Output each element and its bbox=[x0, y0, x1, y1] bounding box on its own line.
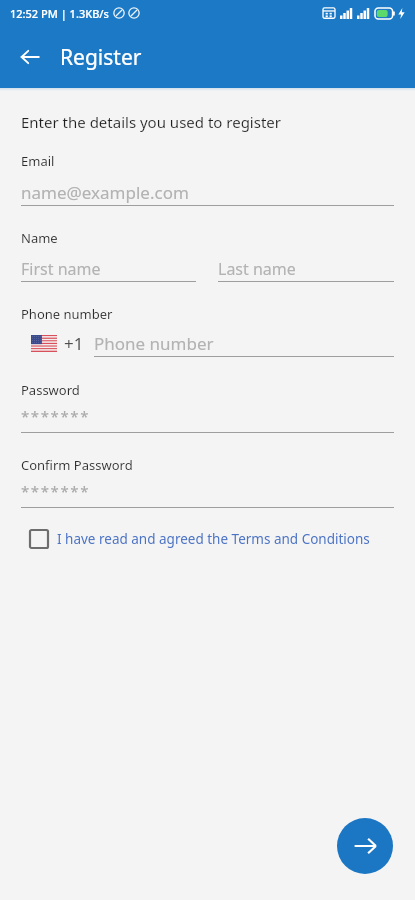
staticText: Enter the details you used to register bbox=[21, 112, 281, 132]
staticText: First name bbox=[21, 258, 101, 280]
staticText: Confirm Password bbox=[21, 456, 133, 474]
staticText: Phone number bbox=[21, 305, 113, 323]
button[interactable]: I have read and agreed the Terms and Con… bbox=[21, 524, 394, 554]
button[interactable]: Phone number bbox=[94, 330, 394, 357]
button[interactable]: ******* bbox=[21, 474, 394, 508]
button[interactable]: Next bbox=[337, 818, 393, 874]
staticText: Name bbox=[21, 229, 58, 247]
staticText: Last name bbox=[218, 258, 296, 280]
staticText: Phone number bbox=[94, 332, 214, 355]
button[interactable]: First name bbox=[21, 247, 196, 282]
button[interactable]: name@example.com bbox=[21, 170, 394, 206]
staticText: Register bbox=[60, 43, 142, 72]
button[interactable]: Back bbox=[8, 35, 52, 79]
staticText: +1 bbox=[64, 332, 84, 355]
staticText: Password bbox=[21, 381, 80, 399]
button[interactable]: Country code United States +1 bbox=[21, 332, 84, 355]
button[interactable]: ******* bbox=[21, 399, 394, 433]
staticText: ******* bbox=[21, 481, 91, 501]
staticText: ******* bbox=[21, 406, 91, 426]
button[interactable]: Last name bbox=[218, 247, 394, 282]
staticText: name@example.com bbox=[21, 181, 189, 204]
staticText: Email bbox=[21, 152, 55, 170]
staticText: I have read and agreed the Terms and Con… bbox=[57, 530, 370, 548]
staticText: 12:52 PM | 1.3KB/s bbox=[10, 6, 109, 21]
